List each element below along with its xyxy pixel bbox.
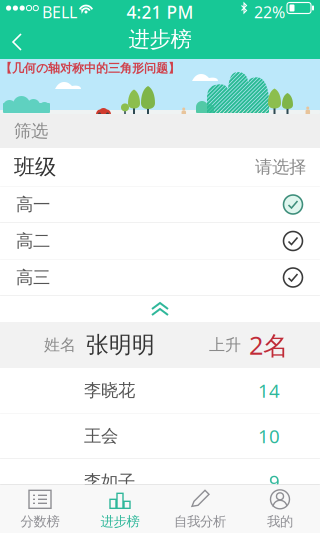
staticText: 22% <box>254 1 285 23</box>
staticText: BELL <box>42 1 77 23</box>
staticText: 高一 <box>16 194 50 215</box>
button[interactable]: 高二 <box>0 223 320 259</box>
button[interactable]: Collapse <box>0 296 320 322</box>
staticText: 姓名 <box>44 335 76 355</box>
staticText: 高二 <box>16 230 50 252</box>
button[interactable]: 李晓花 <box>0 368 320 413</box>
button[interactable]: 李如子 <box>0 459 320 504</box>
staticText: 王会 <box>84 425 118 447</box>
button[interactable]: 自我分析 <box>160 485 240 533</box>
staticText: 李晓花 <box>84 380 135 401</box>
staticText: 进步榜 <box>128 26 191 53</box>
button[interactable]: 王会 <box>0 413 320 458</box>
button[interactable]: 班级 <box>0 148 320 186</box>
button[interactable]: 分数榜 <box>0 485 80 533</box>
staticText: 分数榜 <box>20 513 59 530</box>
staticText: 4:21 PM <box>126 0 193 23</box>
staticText: 14 <box>258 378 280 403</box>
button[interactable]: 高三 <box>0 259 320 295</box>
staticText: 高三 <box>16 267 50 288</box>
staticText: 自我分析 <box>174 513 226 530</box>
staticText: 上升 <box>209 335 241 355</box>
staticText: 李如子 <box>84 471 135 492</box>
staticText: 2名 <box>249 328 288 362</box>
staticText: 张明明 <box>86 331 155 359</box>
button[interactable]: 我的 <box>240 485 320 533</box>
staticText: 【几何の轴对称中的三角形问题】 <box>0 61 180 76</box>
staticText: 9 <box>269 469 280 494</box>
staticText: 筛选 <box>14 120 48 142</box>
button[interactable]: 高一 <box>0 186 320 222</box>
staticText: 班级 <box>14 154 56 180</box>
button[interactable]: Back <box>0 20 35 59</box>
button[interactable]: 进步榜 <box>80 485 160 533</box>
staticText: 我的 <box>267 513 293 530</box>
staticText: 进步榜 <box>100 513 139 530</box>
staticText: 请选择 <box>255 156 306 178</box>
staticText: 10 <box>258 424 280 448</box>
